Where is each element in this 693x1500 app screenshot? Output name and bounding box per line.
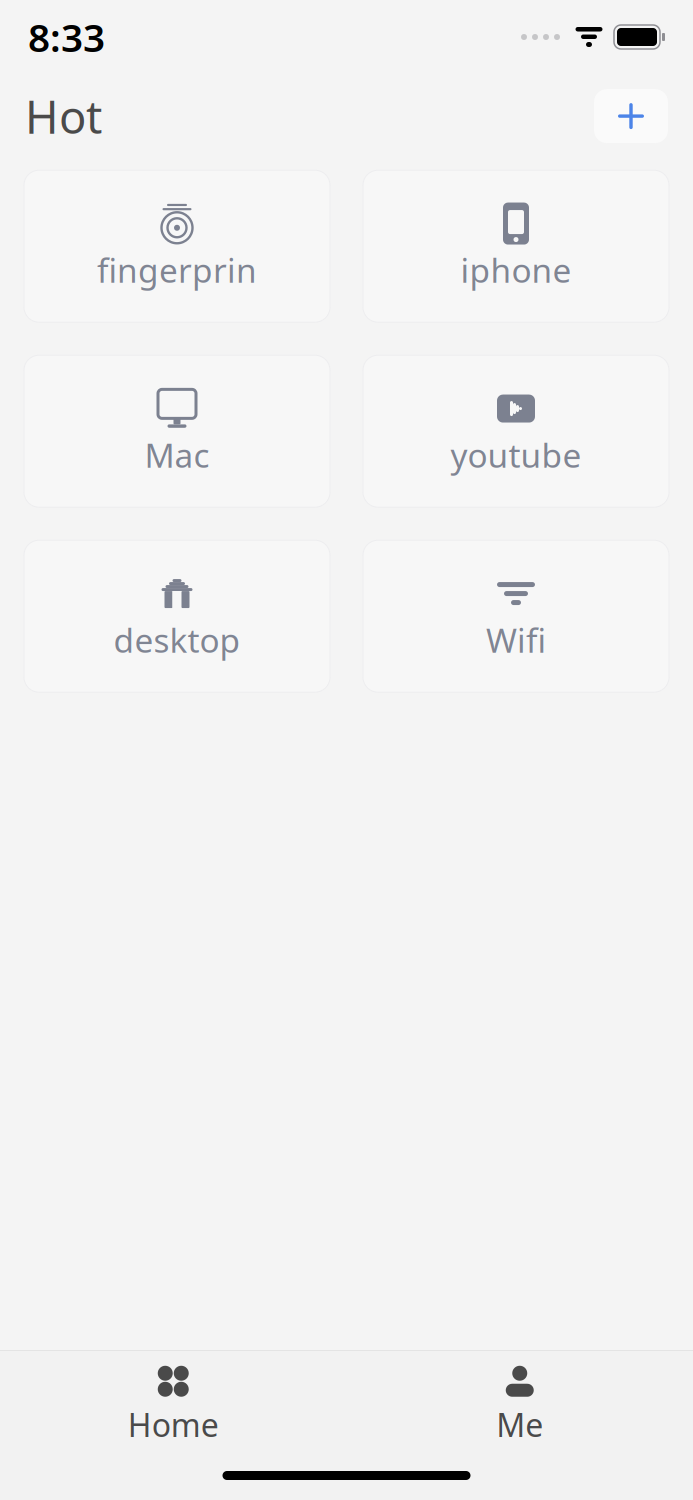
staticText: iphone <box>460 248 571 292</box>
button[interactable]: Home <box>73 1365 273 1445</box>
staticText: fingerprin <box>97 248 257 292</box>
staticText: 8:33 <box>28 11 105 63</box>
staticText: youtube <box>450 433 581 477</box>
button[interactable]: Me <box>420 1365 620 1445</box>
staticText: Mac <box>144 433 209 477</box>
button[interactable]: iphone <box>363 170 669 322</box>
button[interactable]: Mac <box>24 355 330 507</box>
button[interactable]: Wifi <box>363 540 669 692</box>
staticText: Wifi <box>486 618 546 662</box>
button[interactable]: youtube <box>363 355 669 507</box>
button[interactable]: fingerprin <box>24 170 330 322</box>
button[interactable]: Add <box>594 89 668 143</box>
staticText: Hot <box>25 86 102 146</box>
staticText: Home <box>128 1403 219 1446</box>
staticText: Me <box>496 1403 543 1446</box>
button[interactable]: desktop <box>24 540 330 692</box>
staticText: desktop <box>113 618 240 662</box>
